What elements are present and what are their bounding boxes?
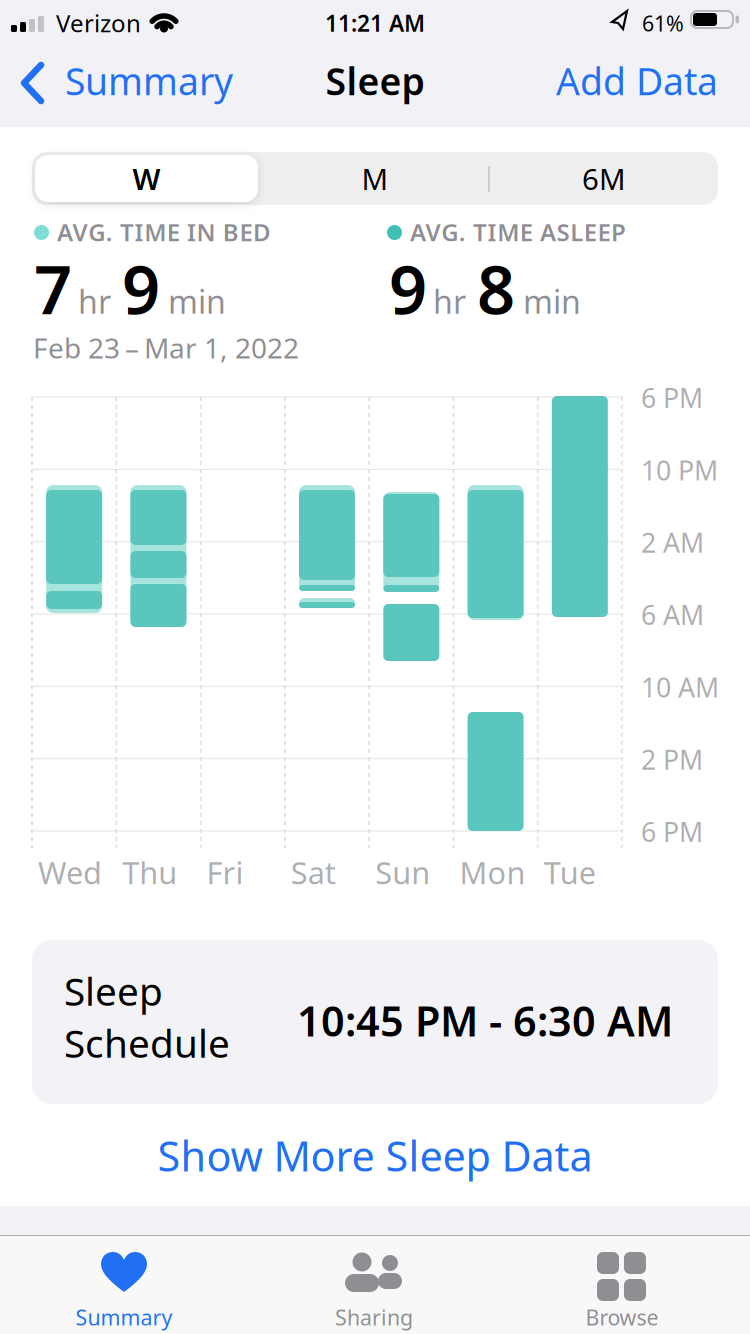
staticText: 6 AM: [641, 597, 704, 632]
staticText: 10 PM: [641, 452, 718, 488]
staticText: Verizon: [56, 7, 141, 39]
staticText: Mon: [459, 852, 525, 893]
staticText: Add Data: [556, 56, 718, 106]
staticText: Summary: [75, 1303, 172, 1331]
button[interactable]: Summary: [34, 1252, 214, 1331]
staticText: Browse: [585, 1303, 658, 1331]
staticText: Schedule: [64, 1017, 230, 1068]
staticText: hr: [433, 280, 466, 322]
staticText: hr: [78, 280, 111, 322]
staticText: Sharing: [335, 1303, 413, 1331]
staticText: Sat: [291, 852, 336, 893]
staticText: Feb 23 – Mar 1, 2022: [33, 329, 299, 366]
button[interactable]: Show More Sleep Data: [157, 1128, 592, 1183]
staticText: 61%: [642, 9, 684, 37]
staticText: 2 PM: [641, 742, 703, 777]
staticText: Summary: [65, 56, 233, 106]
staticText: 11:21 AM: [325, 8, 425, 38]
staticText: Sleep: [64, 965, 163, 1016]
button[interactable]: 6M: [490, 152, 718, 205]
staticText: W: [132, 159, 160, 198]
staticText: AVG. TIME IN BED: [57, 216, 271, 248]
staticText: 9: [389, 244, 427, 332]
button[interactable]: Sharing: [284, 1252, 464, 1331]
staticText: Sleep: [325, 56, 424, 106]
staticText: Sun: [375, 852, 430, 893]
staticText: 8: [477, 244, 515, 332]
button[interactable]: Summary: [21, 56, 281, 110]
staticText: Thu: [122, 852, 177, 893]
staticText: 7: [34, 244, 72, 332]
button[interactable]: M: [261, 152, 489, 205]
staticText: Tue: [544, 852, 596, 893]
staticText: 10:45 PM - 6:30 AM: [297, 993, 673, 1048]
staticText: M: [361, 159, 388, 198]
staticText: 10 AM: [641, 669, 719, 705]
staticText: 9: [122, 244, 160, 332]
staticText: min: [523, 280, 581, 322]
staticText: Show More Sleep Data: [157, 1128, 592, 1183]
staticText: 6 PM: [641, 380, 703, 415]
staticText: 6M: [582, 159, 626, 198]
staticText: AVG. TIME ASLEEP: [410, 216, 626, 248]
staticText: 6 PM: [641, 814, 703, 849]
button[interactable]: Add Data: [518, 56, 718, 106]
staticText: Wed: [38, 852, 102, 893]
staticText: min: [168, 280, 226, 322]
button[interactable]: Browse: [532, 1252, 712, 1331]
button[interactable]: W: [35, 155, 258, 202]
staticText: Fri: [207, 852, 244, 893]
button[interactable]: Sleep: [32, 940, 718, 1104]
staticText: 2 AM: [641, 525, 704, 560]
